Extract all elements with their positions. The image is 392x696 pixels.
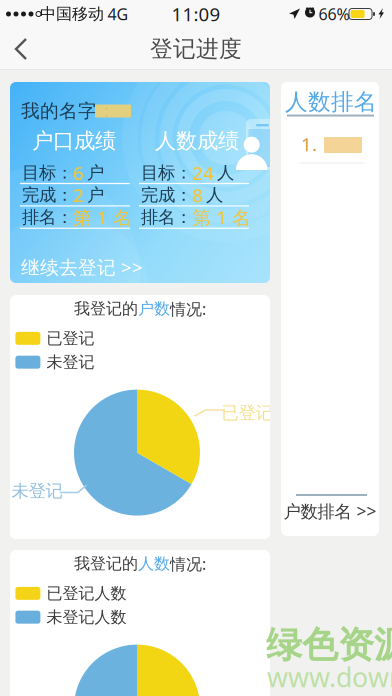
staticText: 户	[87, 162, 104, 183]
staticText: 已登记	[46, 329, 94, 348]
staticText: 8	[192, 183, 203, 207]
staticText: 情况:	[170, 298, 206, 319]
staticText: ：	[56, 162, 73, 183]
staticText: ：	[56, 184, 73, 206]
staticText: 完成	[141, 184, 175, 206]
button[interactable]: 继续去登记 >>	[21, 254, 143, 280]
staticText: 我的名字	[21, 99, 97, 122]
staticText: 未登记	[11, 480, 62, 502]
staticText: ：	[56, 207, 73, 228]
staticText: 66%	[318, 3, 349, 25]
staticText: 未登记人数	[46, 607, 126, 627]
staticText: 我登记的	[74, 554, 138, 574]
staticText: 人	[217, 162, 234, 183]
staticText: 第 1 名	[192, 205, 251, 230]
staticText: 户口成绩	[32, 128, 116, 154]
staticText: 未登记	[46, 352, 94, 372]
staticText: 人	[206, 184, 223, 206]
staticText: 户	[87, 184, 104, 206]
staticText: 完成	[22, 184, 56, 206]
staticText: 中国移动	[40, 4, 104, 24]
staticText: 户数排名 >>	[283, 499, 376, 522]
staticText: 人数排名	[285, 88, 377, 116]
staticText: 目标	[22, 162, 56, 183]
staticText: 24	[192, 160, 214, 185]
staticText: 排名	[141, 207, 175, 228]
staticText: 人数	[138, 554, 170, 574]
staticText: 绿色资源网	[266, 623, 392, 667]
staticText: ：	[97, 99, 116, 122]
staticText: 目标	[141, 162, 175, 183]
staticText: 4G	[107, 3, 128, 25]
button[interactable]: 户数排名 >>	[281, 498, 379, 524]
staticText: 11:09	[171, 2, 220, 26]
staticText: 人数成绩	[155, 128, 239, 154]
staticText: 排名	[22, 207, 56, 228]
staticText: 已登记人数	[46, 584, 126, 603]
button[interactable]: Back	[0, 29, 52, 69]
staticText: ：	[175, 162, 192, 183]
staticText: www.downcc.com	[267, 659, 392, 695]
staticText: 已登记	[221, 402, 272, 424]
staticText: 第 1 名	[73, 205, 132, 230]
staticText: 6	[73, 160, 84, 185]
staticText: 登记进度	[150, 35, 242, 63]
staticText: 2	[73, 183, 84, 207]
staticText: 户数	[138, 299, 170, 319]
staticText: 我登记的	[74, 299, 138, 319]
staticText	[214, 165, 217, 181]
staticText: 情况:	[170, 553, 206, 574]
staticText: ：	[175, 207, 192, 228]
staticText: ：	[175, 184, 192, 206]
staticText: 1.	[301, 132, 317, 156]
staticText: 继续去登记 >>	[21, 255, 143, 279]
